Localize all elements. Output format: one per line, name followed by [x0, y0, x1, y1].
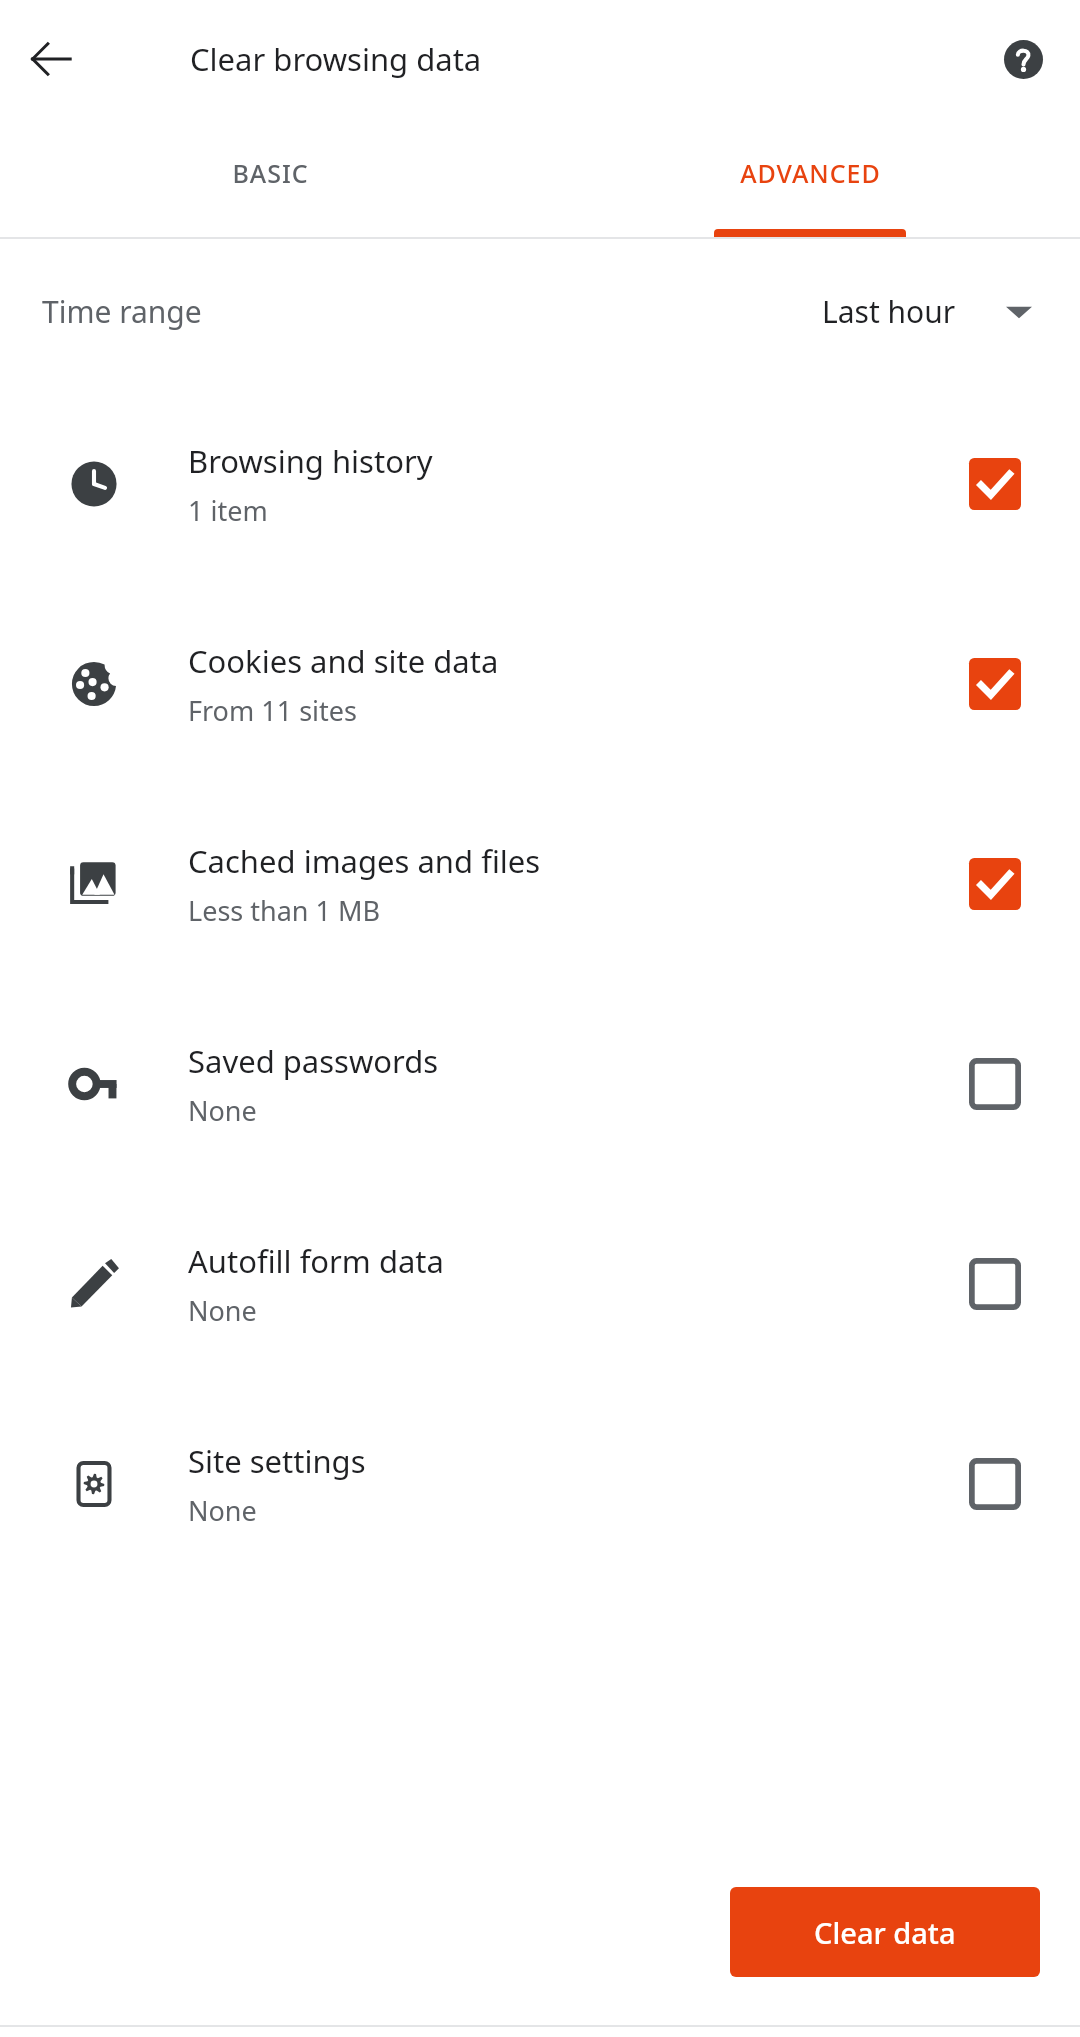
staticText: ADVANCED	[740, 156, 881, 190]
button[interactable]: ADVANCED	[540, 117, 1080, 229]
staticText: 1 item	[188, 492, 268, 529]
staticText: BASIC	[232, 156, 309, 190]
staticText: Last hour	[822, 291, 956, 332]
button[interactable]: Saved passwords	[0, 984, 1080, 1184]
staticText: Cookies and site data	[188, 640, 499, 682]
staticText: Time range	[42, 291, 202, 332]
button[interactable]: Browsing history	[0, 384, 1080, 584]
button[interactable]: Cookies and site data	[0, 584, 1080, 784]
staticText: None	[188, 1492, 257, 1529]
button[interactable]: Autofill form data	[0, 1184, 1080, 1384]
staticText: Saved passwords	[188, 1040, 439, 1082]
staticText: Clear data	[814, 1913, 956, 1952]
staticText: Browsing history	[188, 440, 433, 482]
button[interactable]: Help	[986, 22, 1060, 96]
staticText: Cached images and files	[188, 840, 541, 882]
staticText: Autofill form data	[188, 1240, 444, 1282]
button[interactable]: Site settings	[0, 1384, 1080, 1584]
button[interactable]: BASIC	[0, 117, 540, 229]
staticText: Less than 1 MB	[188, 892, 381, 929]
button[interactable]: Back	[14, 22, 88, 96]
staticText: None	[188, 1092, 257, 1129]
staticText: Site settings	[188, 1440, 366, 1482]
staticText: Clear browsing data	[190, 38, 482, 80]
button[interactable]: Time range	[0, 239, 1080, 384]
button[interactable]: Clear data	[730, 1887, 1040, 1977]
staticText: From 11 sites	[188, 692, 357, 729]
staticText: None	[188, 1292, 257, 1329]
button[interactable]: Cached images and files	[0, 784, 1080, 984]
